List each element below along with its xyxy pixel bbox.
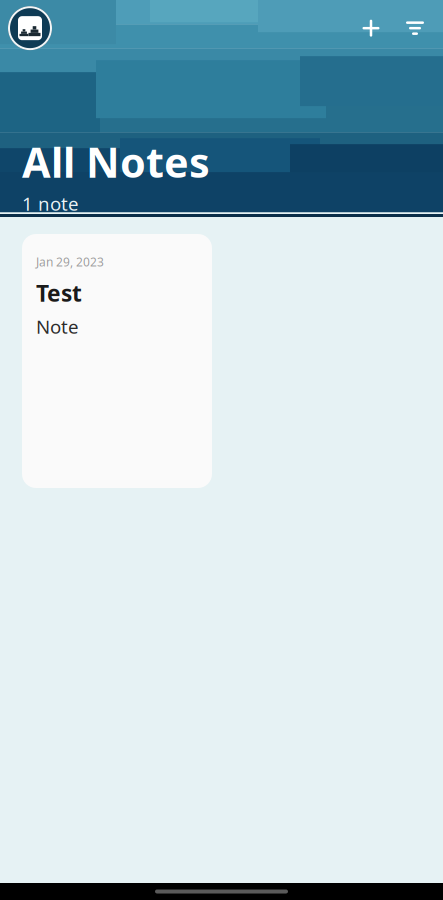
button[interactable]: Add note — [349, 6, 393, 50]
staticText: 1 note — [22, 191, 79, 216]
staticText: Test — [36, 278, 82, 308]
staticText: Note — [36, 314, 79, 339]
button[interactable]: Sort and filter — [393, 6, 437, 50]
staticText: All Notes — [22, 134, 210, 189]
button[interactable]: Profile — [8, 6, 52, 50]
button[interactable]: Jan 29, 2023 — [22, 234, 212, 488]
staticText: Jan 29, 2023 — [36, 254, 104, 270]
